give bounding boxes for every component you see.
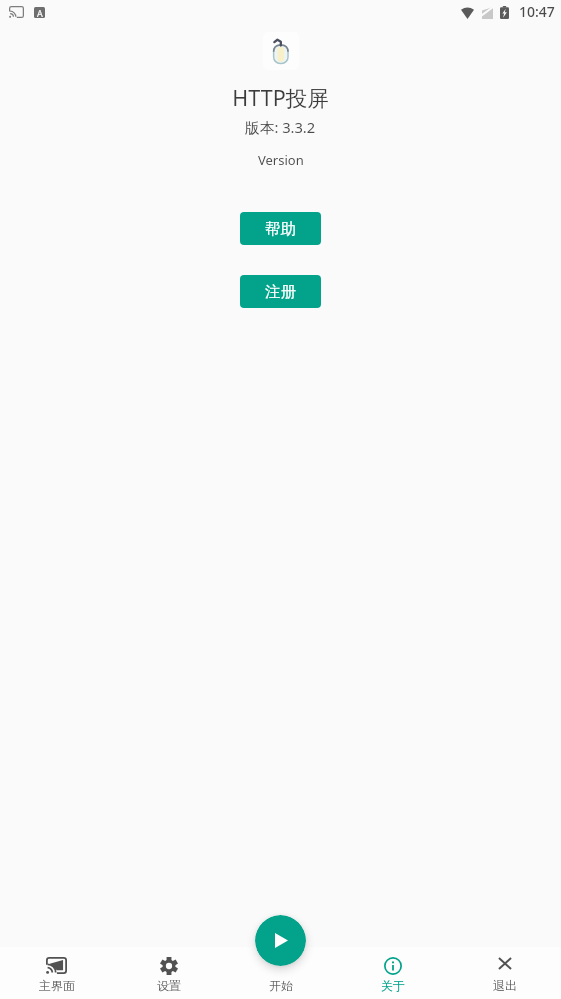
button[interactable]: 注册: [240, 275, 321, 308]
staticText: A: [37, 7, 43, 18]
staticText: 退出: [493, 978, 517, 993]
button[interactable]: 设置: [113, 947, 225, 999]
staticText: 10:47: [519, 2, 555, 21]
button[interactable]: 开始: [255, 915, 306, 966]
staticText: 开始: [269, 978, 293, 993]
staticText: HTTP投屏: [232, 83, 329, 112]
button[interactable]: 关于: [337, 947, 449, 999]
staticText: 注册: [265, 282, 296, 302]
staticText: 帮助: [265, 219, 296, 239]
staticText: 版本: 3.3.2: [245, 117, 316, 137]
button[interactable]: 主界面: [0, 947, 113, 999]
button[interactable]: 开始: [225, 947, 337, 999]
staticText: 关于: [381, 978, 405, 993]
button[interactable]: 帮助: [240, 212, 321, 245]
staticText: 设置: [157, 978, 181, 993]
staticText: Version: [258, 151, 304, 169]
staticText: 主界面: [39, 978, 75, 993]
button[interactable]: 退出: [449, 947, 561, 999]
